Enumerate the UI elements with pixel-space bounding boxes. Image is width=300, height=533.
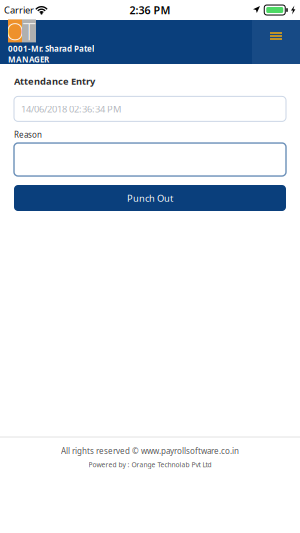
staticText: MANAGER	[8, 54, 49, 65]
staticText: Attendance Entry	[14, 75, 95, 87]
button[interactable]: Punch Out	[14, 185, 286, 211]
staticText: All rights reserved © www.payrollsoftwar…	[61, 445, 239, 456]
staticText: O	[6, 15, 24, 47]
staticText: 14/06/2018 02:36:34 PM	[21, 103, 121, 115]
staticText: Reason	[14, 129, 42, 140]
staticText: Powered by : Orange Technolab Pvt Ltd	[88, 460, 211, 469]
staticText: Carrier	[4, 4, 34, 16]
button[interactable]: Menu	[252, 20, 300, 64]
staticText: 0001-Mr. Sharad Patel	[8, 43, 94, 54]
staticText: 2:36 PM	[129, 3, 170, 17]
staticText: T	[23, 15, 35, 47]
staticText: Punch Out	[127, 192, 173, 204]
